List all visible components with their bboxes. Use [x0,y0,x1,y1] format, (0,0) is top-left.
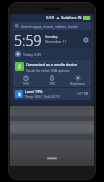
staticText: November 11 [45,39,67,44]
button[interactable]: 9:50 [13,73,39,87]
staticText: Today 5:59 [23,52,42,57]
staticText: 79% [49,82,55,86]
staticText: Temp 300 C Volt 4.07 V [25,95,60,99]
button[interactable]: Settings [81,35,90,44]
button[interactable]: Today 5:59 [13,49,91,59]
staticText: Connected as a media device [26,62,77,67]
button[interactable]: Connected as a media device [13,60,91,87]
staticText: Touch for other USB options [26,68,70,72]
staticText: Sunday [45,34,58,39]
staticText: 5:59 [14,31,42,47]
staticText: 1:01 PM [77,92,89,96]
staticText: 9:50 [23,82,29,86]
button[interactable]: Search apps, music, videos, books [13,22,91,30]
button[interactable]: Level 79% [13,88,91,100]
staticText: Vodafone IN [61,15,82,20]
staticText: 5:59 [46,15,54,20]
staticText: Brightness [70,82,86,86]
staticText: Level 79% [25,89,43,94]
button[interactable]: Brightness [65,73,91,87]
staticText: Search apps, music, videos, books [21,24,79,29]
button[interactable]: 79% [39,73,65,87]
